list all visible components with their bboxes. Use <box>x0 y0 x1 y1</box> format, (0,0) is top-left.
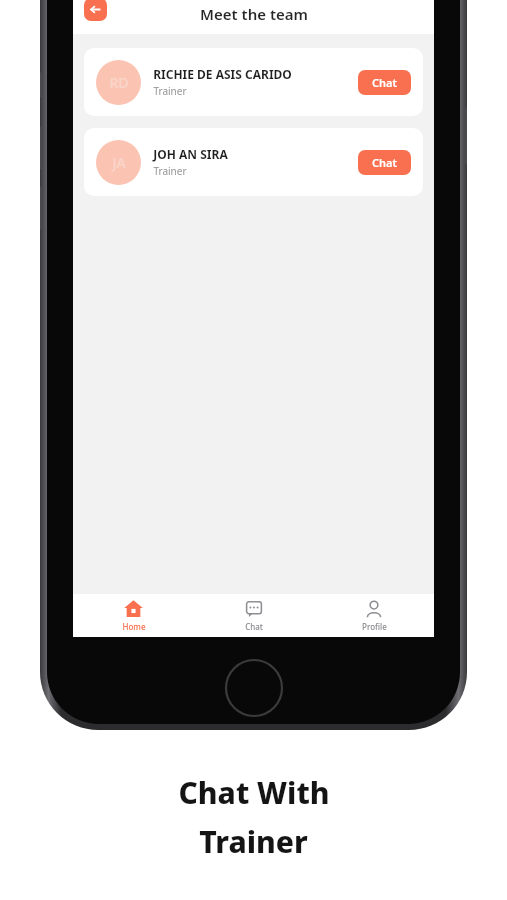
staticText: Chat <box>245 621 263 632</box>
staticText: Trainer <box>153 84 187 98</box>
button[interactable]: Profile <box>314 594 434 637</box>
staticText: RD <box>109 73 129 92</box>
staticText: Profile <box>362 621 387 632</box>
button[interactable]: Back <box>84 0 107 21</box>
button[interactable]: Home <box>73 594 194 637</box>
staticText: Chat <box>372 75 397 90</box>
button[interactable]: Chat <box>194 594 314 637</box>
staticText: Chat With <box>178 772 330 813</box>
staticText: RICHIE DE ASIS CARIDO <box>153 66 292 82</box>
button[interactable]: JA <box>84 128 423 196</box>
staticText: Trainer <box>153 164 187 178</box>
staticText: JOH AN SIRA <box>153 146 228 162</box>
button[interactable]: Chat <box>358 70 411 95</box>
button[interactable]: RD <box>84 48 423 116</box>
staticText: Meet the team <box>200 4 308 24</box>
staticText: Home <box>122 621 146 632</box>
button[interactable]: Chat <box>358 150 411 175</box>
staticText: JA <box>112 153 126 172</box>
staticText: Chat <box>372 155 397 170</box>
staticText: Trainer <box>199 821 308 862</box>
